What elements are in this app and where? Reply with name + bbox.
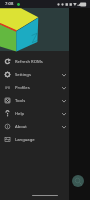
button[interactable]: Tools bbox=[0, 94, 69, 107]
button[interactable]: Refresh ROMs bbox=[0, 55, 69, 68]
staticText: Profiles bbox=[15, 85, 30, 91]
staticText: Tools bbox=[15, 98, 26, 104]
staticText: 7:08 bbox=[5, 1, 14, 7]
staticText: About bbox=[15, 124, 27, 130]
button[interactable]: Profiles bbox=[0, 81, 69, 94]
button[interactable]: Search bbox=[72, 175, 84, 187]
staticText: Language bbox=[15, 137, 35, 143]
button[interactable]: Language bbox=[0, 133, 69, 146]
staticText: Settings bbox=[15, 72, 31, 78]
button[interactable]: About bbox=[0, 120, 69, 133]
button[interactable]: Help bbox=[0, 107, 69, 120]
button[interactable]: Settings bbox=[0, 68, 69, 81]
staticText: Help bbox=[15, 111, 25, 117]
staticText: Refresh ROMs bbox=[15, 59, 43, 65]
